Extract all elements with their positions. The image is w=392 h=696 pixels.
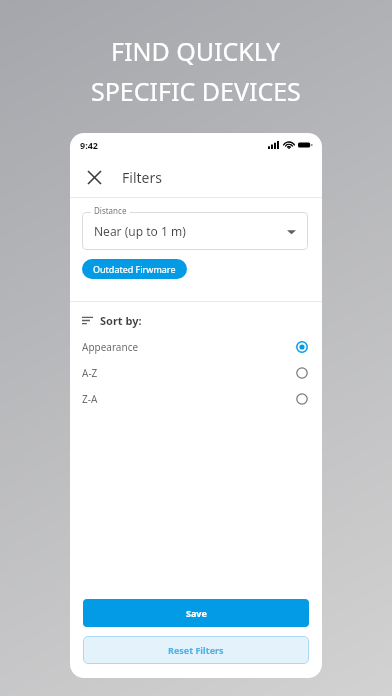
button[interactable]: Z-A bbox=[70, 386, 322, 412]
button[interactable]: Outdated Firwmare bbox=[82, 259, 187, 279]
staticText: Z-A bbox=[82, 392, 98, 406]
button[interactable]: Save bbox=[83, 599, 309, 627]
button[interactable]: Close bbox=[70, 157, 322, 197]
button[interactable]: Near (up to 1 m) bbox=[82, 212, 308, 250]
staticText: Reset Filters bbox=[168, 644, 224, 656]
staticText: Save bbox=[186, 607, 207, 619]
staticText: A-Z bbox=[82, 366, 98, 380]
staticText: Appearance bbox=[82, 340, 139, 354]
staticText: Filters bbox=[122, 168, 162, 187]
button[interactable]: A-Z bbox=[70, 360, 322, 386]
button[interactable]: Reset Filters bbox=[83, 636, 309, 664]
staticText: Distance bbox=[94, 205, 127, 216]
staticText: Near (up to 1 m) bbox=[94, 223, 186, 239]
staticText: Sort by: bbox=[100, 313, 142, 328]
staticText: 9:42 bbox=[80, 139, 98, 151]
button[interactable]: Close bbox=[82, 165, 106, 189]
staticText: FIND QUICKLY bbox=[111, 34, 281, 68]
button[interactable]: Appearance bbox=[70, 334, 322, 360]
staticText: SPECIFIC DEVICES bbox=[91, 74, 301, 108]
staticText: Outdated Firwmare bbox=[93, 263, 176, 275]
